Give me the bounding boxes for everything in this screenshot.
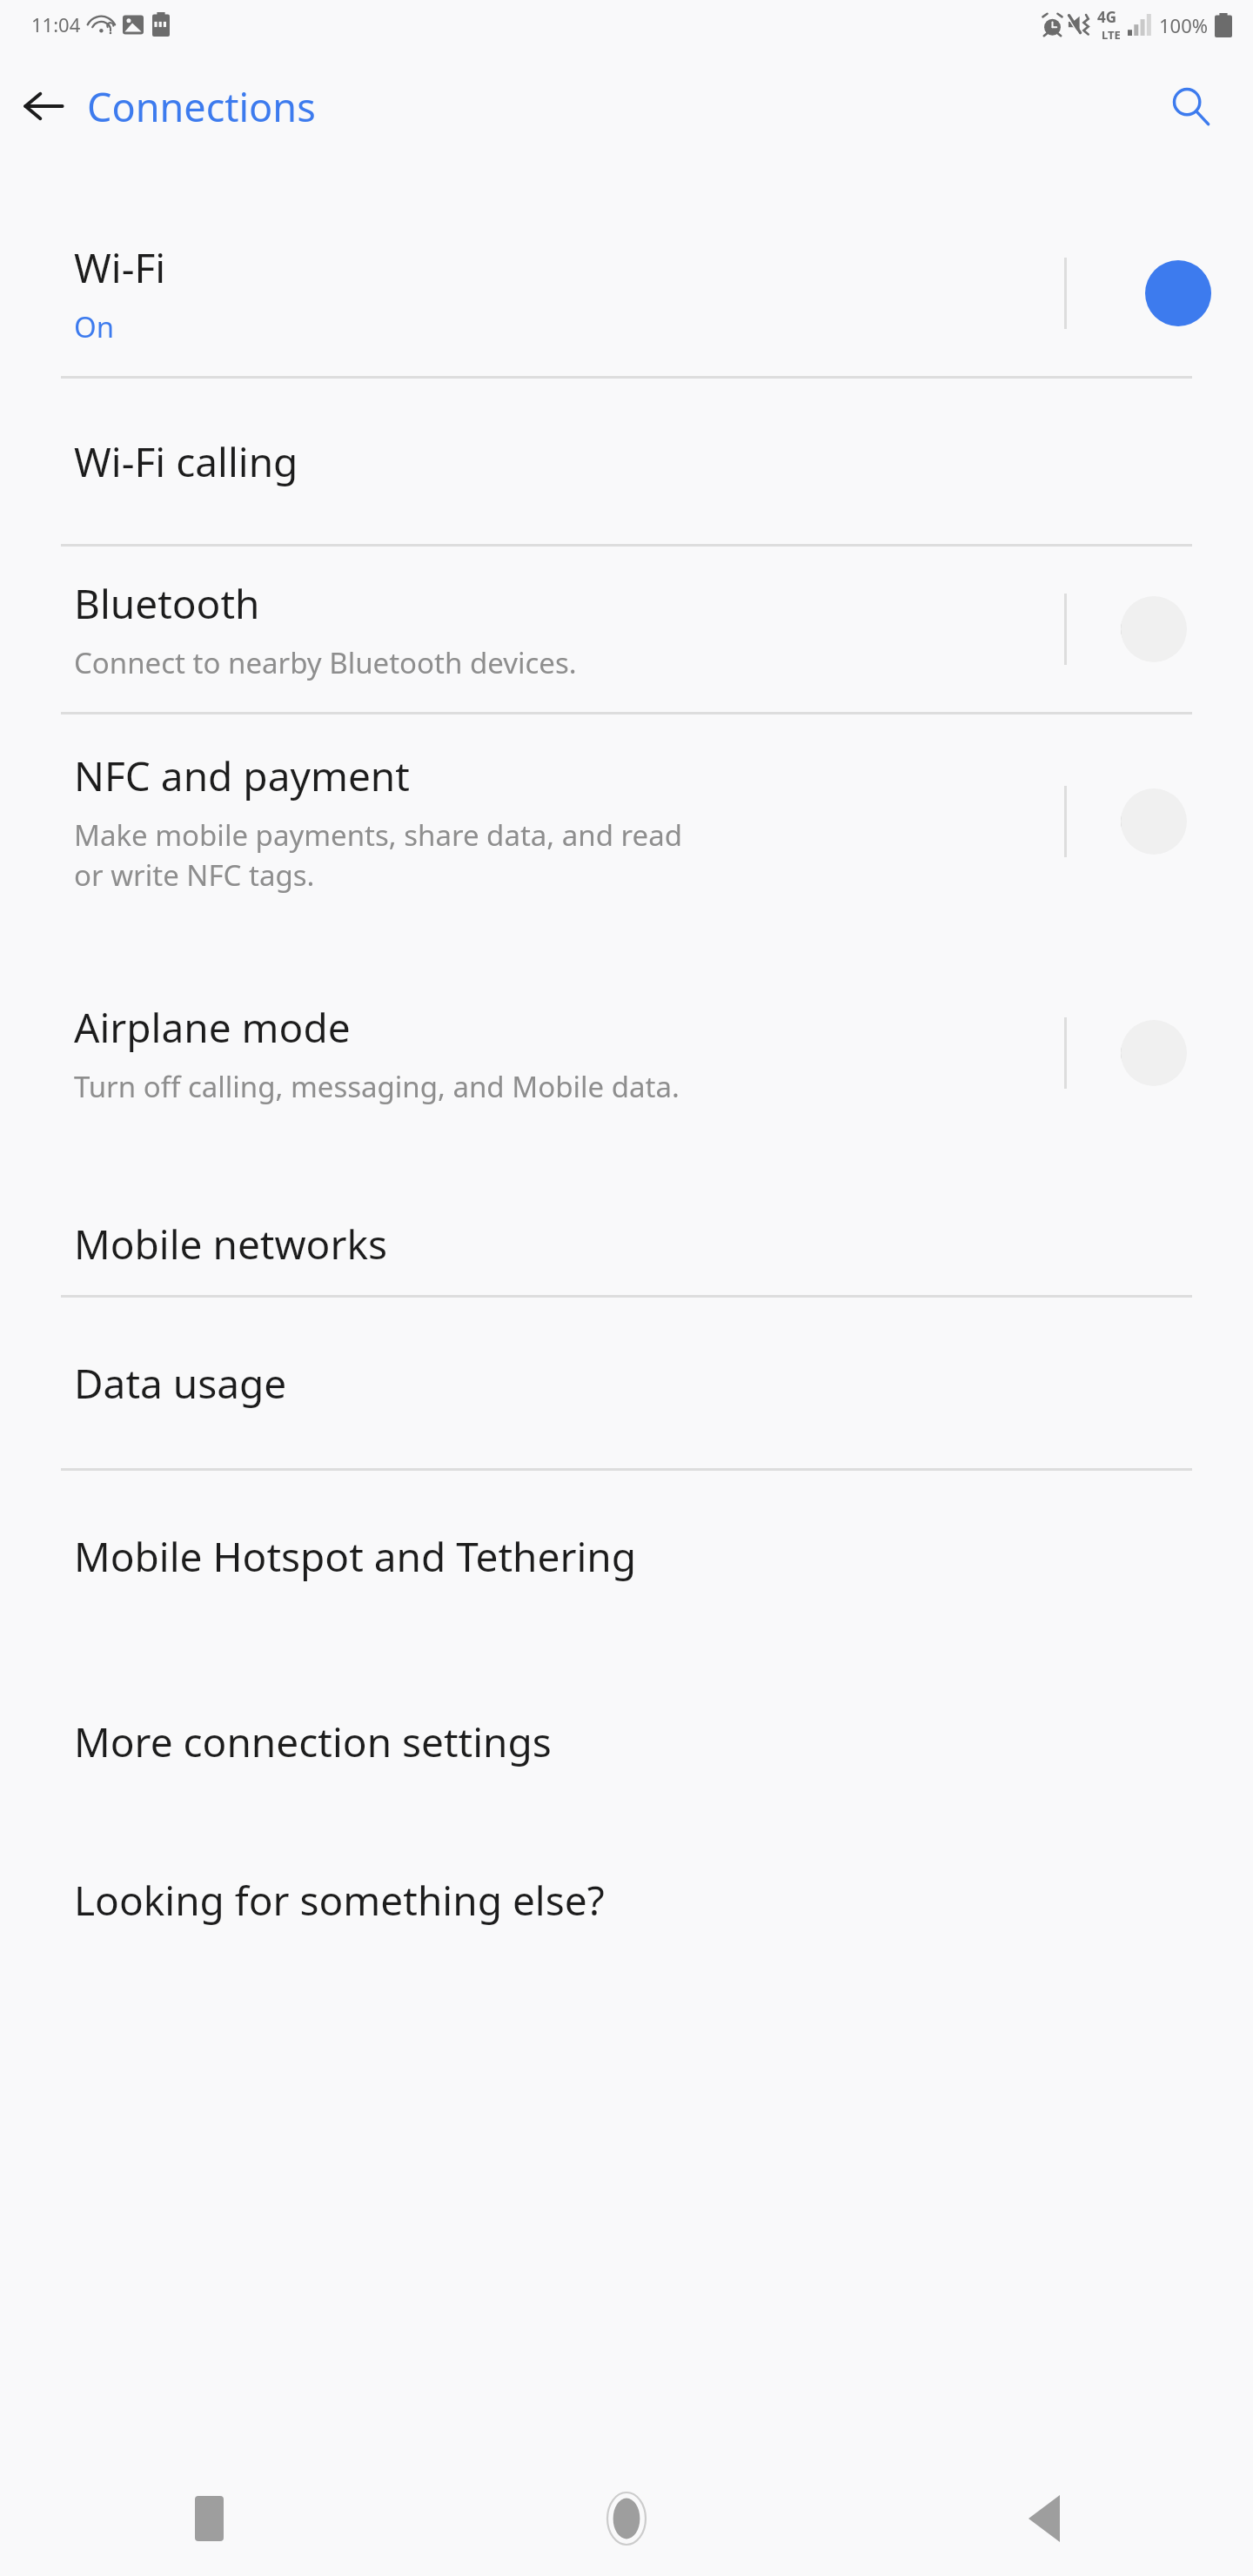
staticText: Looking for something else? [74,1873,605,1928]
button[interactable]: Bluetooth [0,547,1253,712]
button[interactable]: Back [0,58,87,154]
staticText: Connect to nearby Bluetooth devices. [74,643,577,682]
button[interactable]: Mobile Hotspot and Tethering [0,1471,1253,1641]
button[interactable]: NFC and payment [0,714,1253,928]
button[interactable]: Looking for something else? [0,1848,1253,1951]
staticText: 4G [1097,7,1117,27]
button[interactable]: Bluetooth switch [1114,589,1218,669]
staticText: 100% [1159,12,1209,38]
button[interactable]: Airplane mode switch [1114,1013,1218,1093]
button[interactable]: Mobile networks [0,1192,1253,1295]
button[interactable]: More connection settings [0,1690,1253,1793]
button[interactable]: Back [835,2461,1253,2576]
staticText: More connection settings [74,1714,552,1769]
staticText: On [74,307,115,346]
staticText: Data usage [74,1356,287,1411]
staticText: Airplane mode [74,1000,351,1055]
staticText: Bluetooth [74,576,260,631]
button[interactable]: Wi-Fi switch [1114,253,1218,333]
button[interactable]: Home [418,2461,835,2576]
button[interactable]: Wi-Fi [0,211,1253,376]
staticText: Mobile networks [74,1217,388,1271]
staticText: Wi-Fi calling [74,434,298,489]
button[interactable]: Data usage [0,1298,1253,1468]
staticText: Connections [87,80,316,133]
button[interactable]: NFC and payment switch [1114,782,1218,862]
button[interactable]: Search [1145,61,1236,151]
button[interactable]: Wi-Fi calling [0,379,1253,544]
button[interactable]: Recents [0,2461,418,2576]
staticText: 11:04 [31,11,81,37]
button[interactable]: Airplane mode [0,978,1253,1128]
staticText: Make mobile payments, share data, and re… [74,815,682,895]
staticText: Turn off calling, messaging, and Mobile … [74,1067,680,1106]
staticText: NFC and payment [74,748,410,803]
staticText: Wi-Fi [74,240,166,295]
staticText: Mobile Hotspot and Tethering [74,1529,637,1584]
staticText: LTE [1102,27,1121,43]
